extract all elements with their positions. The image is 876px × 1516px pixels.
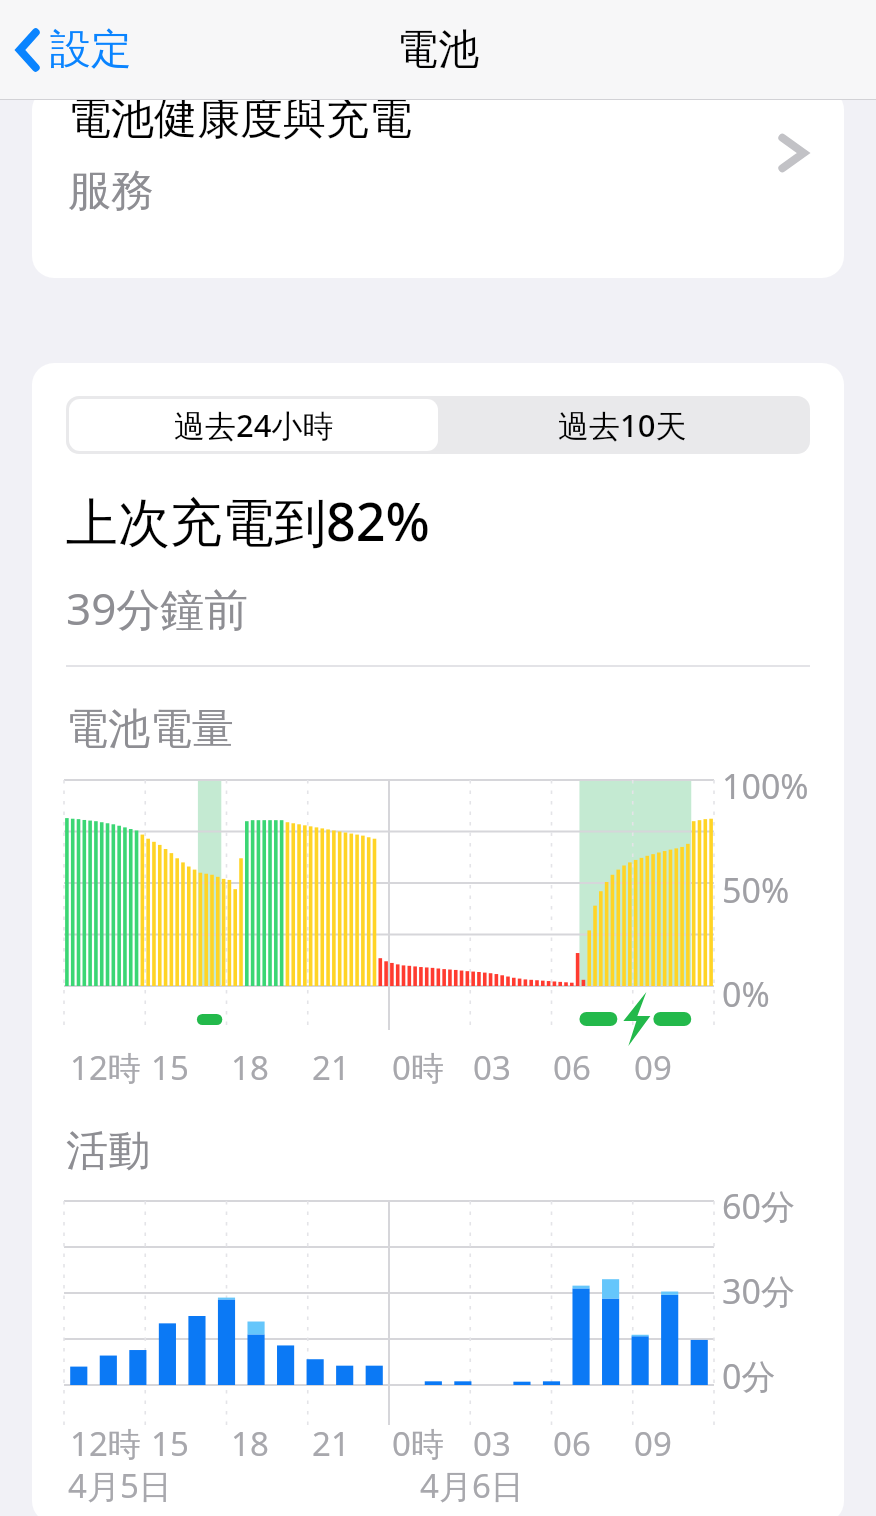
staticText: 電池健康度與充電 xyxy=(68,92,412,146)
staticText: 0時 xyxy=(392,1421,444,1466)
staticText: 電池 xyxy=(397,24,479,76)
staticText: 06 xyxy=(553,1045,591,1090)
staticText: 過去10天 xyxy=(558,404,687,446)
button[interactable]: 電池健康度與充電 xyxy=(32,88,844,278)
staticText: 12時 xyxy=(70,1045,141,1090)
staticText: 21 xyxy=(312,1421,350,1466)
staticText: 0時 xyxy=(392,1045,444,1090)
staticText: 09 xyxy=(634,1421,672,1466)
staticText: 03 xyxy=(473,1421,511,1466)
staticText: 過去24小時 xyxy=(174,404,334,446)
staticText: 電池電量 xyxy=(66,703,234,756)
staticText: 上次充電到82% xyxy=(66,485,430,556)
staticText: 39分鐘前 xyxy=(66,578,249,638)
staticText: 12時 xyxy=(70,1421,141,1466)
staticText: 60分 xyxy=(722,1183,795,1229)
staticText: 18 xyxy=(231,1045,269,1090)
button[interactable]: 設定 xyxy=(8,16,140,84)
button[interactable]: 過去10天 xyxy=(438,399,807,451)
staticText: 4月5日 xyxy=(68,1463,172,1508)
staticText: 設定 xyxy=(50,24,132,76)
other: 電池健康度與充電 xyxy=(774,134,812,172)
staticText: 4月6日 xyxy=(420,1463,524,1508)
staticText: 21 xyxy=(312,1045,350,1090)
staticText: 18 xyxy=(231,1421,269,1466)
staticText: 09 xyxy=(634,1045,672,1090)
staticText: 06 xyxy=(553,1421,591,1466)
staticText: 活動 xyxy=(66,1125,150,1178)
staticText: 50% xyxy=(722,867,790,913)
staticText: 服務 xyxy=(68,164,154,218)
staticText: 100% xyxy=(722,763,809,809)
staticText: 15 xyxy=(151,1421,189,1466)
button[interactable]: 過去24小時 xyxy=(69,399,438,451)
staticText: 0% xyxy=(722,971,770,1017)
staticText: 03 xyxy=(473,1045,511,1090)
staticText: 30分 xyxy=(722,1268,795,1314)
staticText: 0分 xyxy=(722,1353,776,1399)
staticText: 15 xyxy=(151,1045,189,1090)
